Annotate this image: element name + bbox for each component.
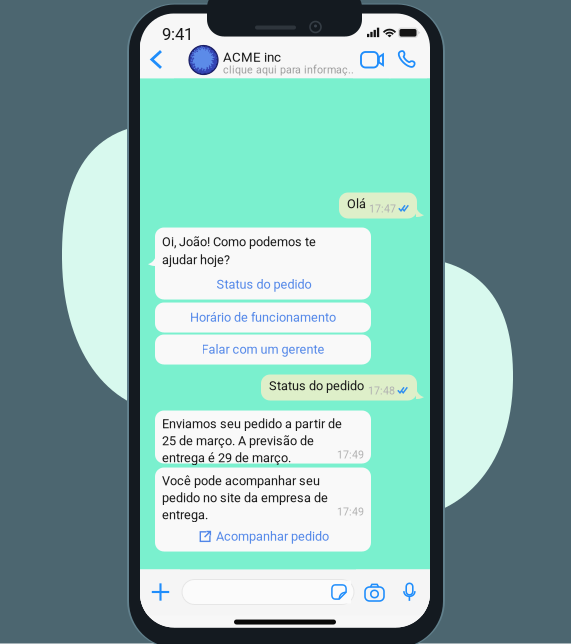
staticText: 17:49 [337, 448, 364, 461]
button[interactable]: Status do pedido [162, 271, 366, 297]
staticText: Olá [347, 196, 366, 211]
button[interactable]: Video call [353, 41, 391, 78]
staticText: 17:48 [368, 384, 395, 397]
staticText: Acompanhar pedido [216, 529, 329, 544]
button[interactable]: Voice call [389, 41, 427, 78]
staticText: Falar com um gerente [201, 342, 324, 357]
staticText: 9:41 [162, 24, 193, 44]
button[interactable]: Back [140, 41, 174, 78]
button[interactable]: Voice message [394, 569, 430, 615]
button[interactable]: Attach [140, 569, 180, 615]
staticText: pedido no site da empresa de [162, 490, 328, 505]
staticText: Você pode acompanhar seu [162, 473, 320, 488]
staticText: Horário de funcionamento [190, 310, 336, 325]
staticText: 17:47 [369, 202, 396, 215]
button[interactable]: Falar com um gerente [155, 334, 371, 364]
button[interactable]: Acompanhar pedido [162, 524, 366, 548]
staticText: ACME inc [223, 49, 281, 65]
staticText: 17:49 [337, 505, 364, 518]
staticText: Enviamos seu pedido a partir de [162, 416, 342, 431]
staticText: clique aqui para informaç... [223, 63, 357, 76]
staticText: Oi, João! Como podemos te [162, 234, 316, 249]
button[interactable]: Horário de funcionamento [155, 302, 371, 332]
button[interactable]: Sticker [327, 580, 351, 603]
staticText: Status do pedido [216, 277, 311, 292]
button[interactable]: Camera [356, 569, 394, 615]
staticText: entrega. [162, 507, 208, 522]
staticText: Status do pedido [269, 378, 364, 393]
staticText: 25 de março. A previsão de [162, 433, 314, 448]
staticText: ajudar hoje? [162, 252, 230, 267]
staticText: entrega é 29 de março. [162, 450, 291, 465]
